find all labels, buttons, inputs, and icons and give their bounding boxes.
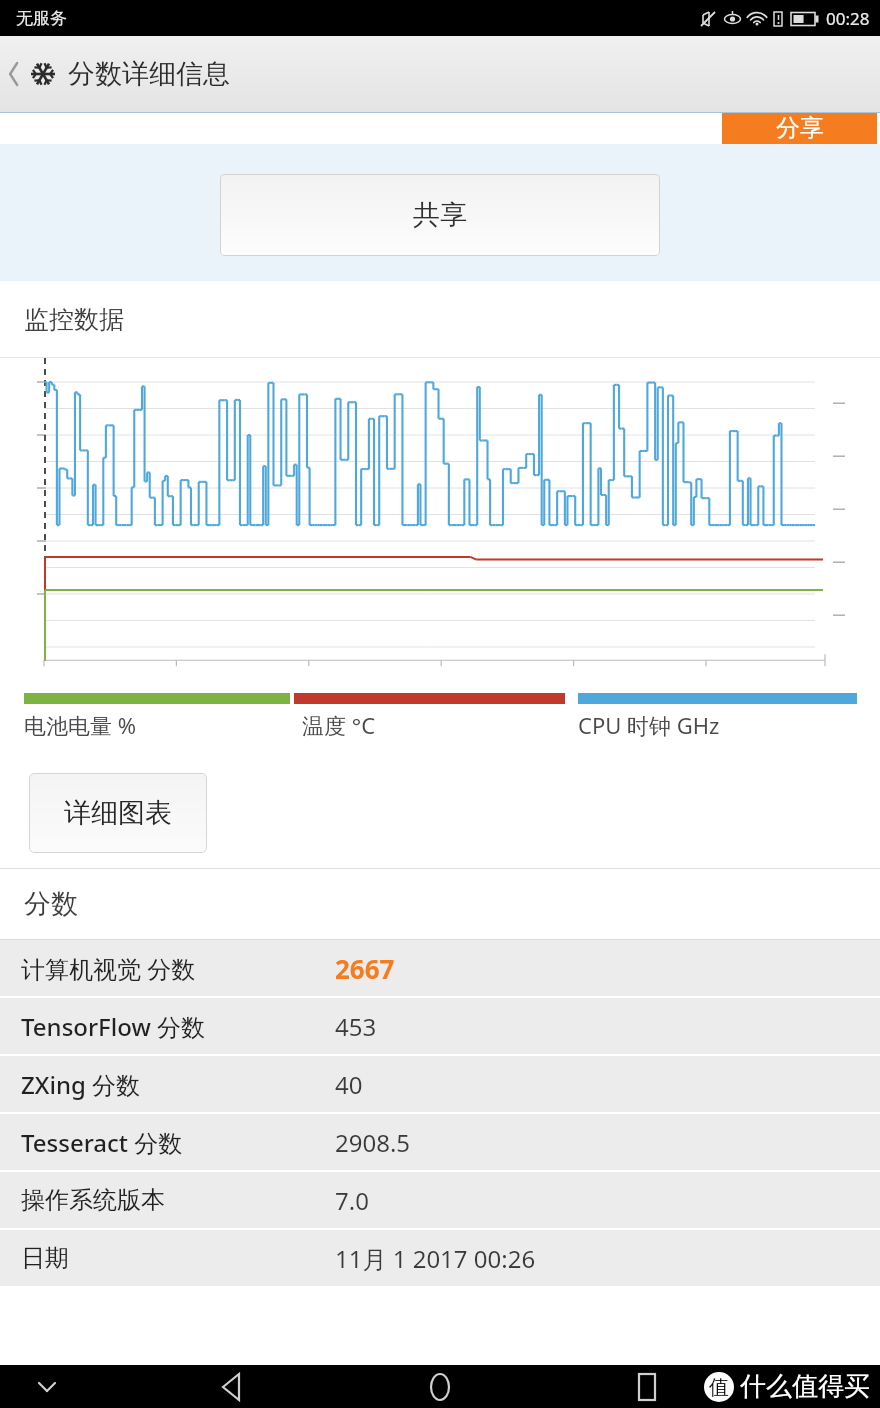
staticText: 00:28 <box>826 7 870 30</box>
staticText: 值 <box>709 1375 729 1400</box>
button[interactable]: 计算机视觉 分数 <box>0 940 880 996</box>
staticText: 计算机视觉 分数 <box>21 952 196 985</box>
staticText: CPU 时钟 GHz <box>578 710 720 740</box>
other: Back <box>6 59 24 89</box>
staticText: 监控数据 <box>24 304 124 335</box>
button[interactable]: Tesseract 分数 <box>0 1114 880 1170</box>
button[interactable]: 共享 <box>220 174 660 256</box>
staticText: 分数详细信息 <box>68 57 230 91</box>
staticText: 温度 °C <box>302 710 376 740</box>
staticText: 453 <box>335 1010 377 1043</box>
staticText: 40 <box>335 1068 363 1101</box>
button[interactable]: 日期 <box>0 1230 880 1286</box>
staticText: ZXing 分数 <box>21 1068 141 1101</box>
staticText: 详细图表 <box>64 796 172 830</box>
button[interactable]: Hide keyboard <box>30 1370 64 1404</box>
staticText: 无服务 <box>16 8 67 29</box>
button[interactable]: Recents <box>629 1369 665 1405</box>
staticText: 2908.5 <box>335 1126 411 1159</box>
button[interactable]: 分享 <box>722 113 877 144</box>
staticText: 日期 <box>21 1243 69 1273</box>
staticText: 2667 <box>335 951 395 986</box>
staticText: 什么值得买 <box>740 1370 870 1403</box>
staticText: 11月 1 2017 00:26 <box>335 1242 536 1275</box>
staticText: Tesseract 分数 <box>21 1126 183 1159</box>
staticText: 共享 <box>413 198 467 232</box>
button[interactable]: Home <box>422 1369 458 1405</box>
button[interactable]: 详细图表 <box>29 773 207 853</box>
staticText: TensorFlow 分数 <box>21 1010 206 1043</box>
staticText: 分享 <box>776 113 824 143</box>
button[interactable]: 操作系统版本 <box>0 1172 880 1228</box>
button[interactable]: TensorFlow 分数 <box>0 998 880 1054</box>
staticText: 分数 <box>24 887 78 921</box>
button[interactable]: Back <box>214 1369 250 1405</box>
button[interactable]: Back <box>0 36 242 112</box>
button[interactable]: ZXing 分数 <box>0 1056 880 1112</box>
staticText: 7.0 <box>335 1184 369 1217</box>
staticText: 操作系统版本 <box>21 1185 165 1215</box>
staticText: 电池电量 % <box>24 710 137 740</box>
